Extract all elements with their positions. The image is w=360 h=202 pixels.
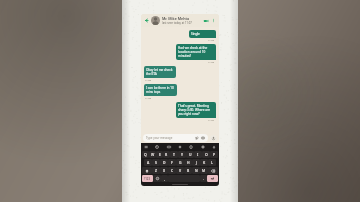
button[interactable]: D: [160, 159, 168, 166]
button[interactable]: Single: [189, 30, 216, 38]
staticText: V: [179, 168, 182, 173]
staticText: Q: [144, 152, 147, 157]
button[interactable]: I can be there in 10 mins tops: [144, 84, 177, 96]
button[interactable]: That's great. Meeting sharp 3:30. Where …: [176, 102, 216, 118]
staticText: C: [171, 168, 174, 173]
button[interactable]: Backspace: [208, 167, 218, 174]
button[interactable]: Settings: [178, 145, 182, 149]
staticText: J: [196, 160, 197, 165]
staticText: 11:06: [145, 96, 152, 99]
button[interactable]: Camera: [201, 136, 205, 140]
button[interactable]: X: [160, 167, 168, 174]
staticText: last seen today at 11:07: [162, 21, 192, 25]
staticText: D: [163, 160, 166, 165]
staticText: 11:06: [145, 78, 152, 81]
button[interactable]: Attach: [195, 136, 199, 140]
staticText: Y: [181, 152, 183, 157]
button[interactable]: [151, 16, 160, 25]
staticText: ,: [164, 177, 165, 181]
staticText: 11:05: [208, 60, 215, 63]
button[interactable]: C: [168, 167, 176, 174]
staticText: That's great. Meeting sharp 3:30. Where …: [178, 104, 214, 116]
button[interactable]: J: [192, 159, 200, 166]
button[interactable]: B: [184, 167, 192, 174]
button[interactable]: Keyboard: [144, 145, 148, 149]
button[interactable]: Type your message: [143, 134, 208, 142]
staticText: B: [187, 168, 190, 173]
staticText: O: [205, 152, 208, 157]
staticText: M: [202, 168, 206, 173]
staticText: A: [147, 160, 150, 165]
staticText: ?123: [144, 177, 151, 181]
staticText: Type your message: [146, 136, 195, 140]
staticText: H: [187, 160, 190, 165]
button[interactable]: N: [192, 167, 200, 174]
staticText: U: [189, 152, 192, 157]
button[interactable]: U: [186, 151, 194, 158]
button[interactable]: K: [200, 159, 208, 166]
button[interactable]: P: [210, 151, 218, 158]
staticText: F: [171, 160, 173, 165]
button[interactable]: F: [168, 159, 176, 166]
staticText: X: [163, 168, 166, 173]
button[interactable]: O: [202, 151, 210, 158]
staticText: W: [151, 152, 155, 157]
staticText: P: [213, 152, 216, 157]
button[interactable]: Emoji: [153, 175, 161, 182]
staticText: N: [195, 168, 198, 173]
staticText: 11:05: [208, 38, 215, 41]
staticText: 11:07: [208, 118, 215, 121]
button[interactable]: Voice input: [212, 145, 216, 149]
button[interactable]: H: [184, 159, 192, 166]
button[interactable]: T: [170, 151, 178, 158]
button[interactable]: Clipboard: [189, 145, 193, 149]
button[interactable]: W: [149, 151, 156, 158]
button[interactable]: M: [200, 167, 208, 174]
staticText: E: [159, 152, 161, 157]
button[interactable]: More options: [211, 18, 216, 23]
staticText: Single: [191, 32, 200, 36]
button[interactable]: E: [156, 151, 163, 158]
staticText: Z: [155, 168, 157, 173]
button[interactable]: Back: [141, 14, 219, 27]
button[interactable]: V: [176, 167, 184, 174]
staticText: R: [165, 152, 168, 157]
staticText: K: [203, 160, 206, 165]
button[interactable]: Q: [142, 151, 149, 158]
button[interactable]: ,: [161, 175, 168, 182]
staticText: Had we check at the location around 10 m…: [178, 46, 214, 58]
staticText: Okay let me check the ETA: [146, 68, 174, 76]
button[interactable]: Enter: [207, 175, 218, 182]
staticText: .: [203, 177, 204, 181]
staticText: I: [197, 152, 199, 157]
staticText: S: [155, 160, 157, 165]
button[interactable]: L: [208, 159, 216, 166]
button[interactable]: S: [152, 159, 160, 166]
staticText: L: [211, 160, 213, 165]
button[interactable]: R: [163, 151, 170, 158]
button[interactable]: Send voice message: [210, 135, 217, 142]
button[interactable]: .: [200, 175, 207, 182]
button[interactable]: GIF: [167, 145, 171, 149]
button[interactable]: I: [194, 151, 202, 158]
staticText: I can be there in 10 mins tops: [146, 86, 175, 94]
button[interactable]: Y: [178, 151, 186, 158]
button[interactable]: Back: [144, 18, 149, 23]
button[interactable]: Okay let me check the ETA: [144, 66, 176, 78]
button[interactable]: A: [144, 159, 152, 166]
staticText: G: [179, 160, 182, 165]
staticText: Mr. Mike Mehta: [162, 16, 190, 21]
button[interactable]: Had we check at the location around 10 m…: [176, 44, 216, 60]
button[interactable]: Shift: [142, 167, 152, 174]
button[interactable]: Stickers: [155, 145, 159, 149]
staticText: T: [173, 152, 175, 157]
button[interactable]: G: [176, 159, 184, 166]
button[interactable]: Translate: [201, 145, 205, 149]
button[interactable]: ?123: [142, 175, 153, 182]
button[interactable]: Video call: [203, 18, 209, 24]
button[interactable]: Z: [152, 167, 160, 174]
